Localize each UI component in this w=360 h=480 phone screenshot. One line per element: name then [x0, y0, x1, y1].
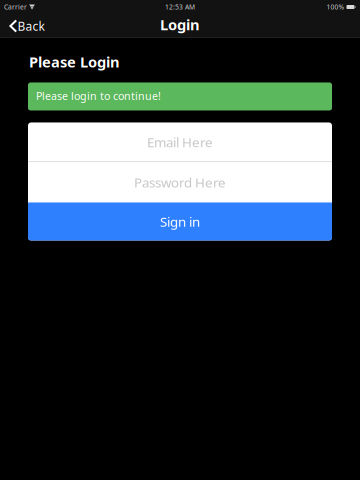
button[interactable]: Password Here: [28, 162, 332, 202]
button[interactable]: Sign in: [28, 202, 332, 240]
staticText: 12:53 AM: [165, 3, 195, 11]
staticText: Back: [18, 18, 45, 34]
staticText: 100%: [326, 3, 344, 11]
staticText: Password Here: [134, 173, 226, 191]
button[interactable]: Back: [0, 13, 51, 39]
staticText: Carrier: [4, 3, 27, 11]
staticText: Please login to continue!: [36, 89, 161, 103]
button[interactable]: Email Here: [28, 122, 332, 161]
staticText: Login: [160, 15, 200, 34]
staticText: Please Login: [29, 52, 120, 71]
staticText: Email Here: [147, 133, 213, 151]
staticText: Sign in: [160, 213, 200, 230]
